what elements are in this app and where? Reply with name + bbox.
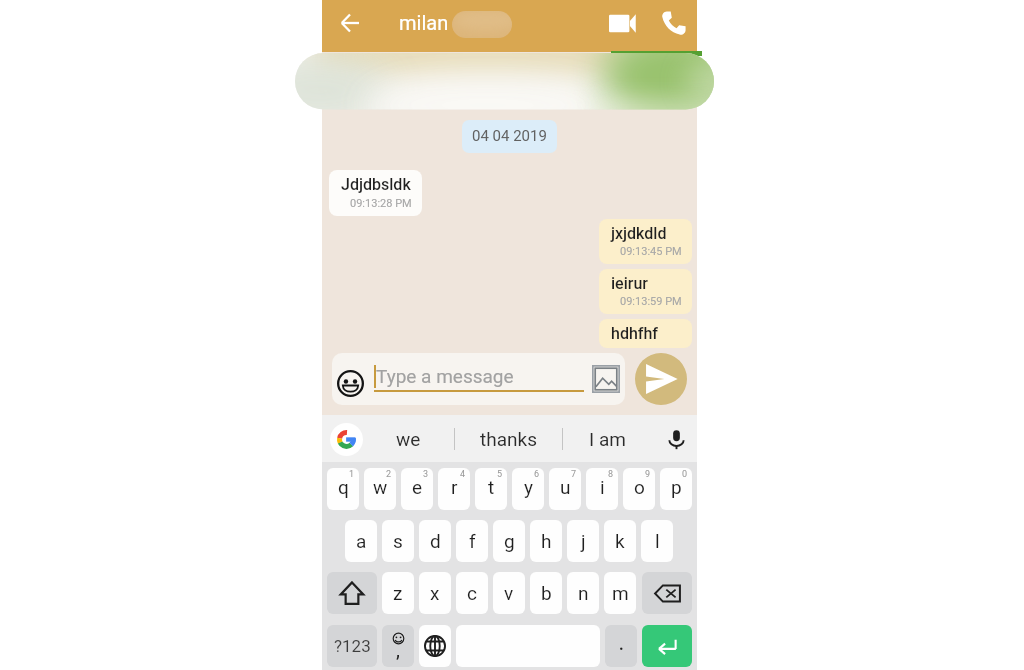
- button[interactable]: Send: [635, 353, 687, 405]
- button[interactable]: we: [363, 415, 453, 462]
- staticText: r: [451, 476, 458, 498]
- staticText: .: [619, 635, 624, 654]
- button[interactable]: Shift: [327, 572, 377, 614]
- staticText: i: [600, 476, 605, 498]
- button[interactable]: ieirur: [599, 269, 692, 314]
- button[interactable]: x: [419, 572, 451, 614]
- staticText: 09:13:28 PM: [350, 197, 412, 210]
- button[interactable]: c: [456, 572, 488, 614]
- staticText: 6: [534, 469, 540, 480]
- button[interactable]: Emoji and comma: [382, 625, 414, 667]
- button[interactable]: y: [512, 468, 544, 510]
- button[interactable]: Enter: [642, 625, 692, 667]
- staticText: 09:13:45 PM: [620, 245, 682, 258]
- button[interactable]: ?123: [327, 625, 377, 667]
- button[interactable]: o: [623, 468, 655, 510]
- button[interactable]: thanks: [463, 415, 553, 462]
- button[interactable]: q: [327, 468, 359, 510]
- staticText: z: [393, 582, 403, 604]
- button[interactable]: r: [438, 468, 470, 510]
- staticText: ieirur: [611, 274, 648, 293]
- button[interactable]: Video call: [600, 1, 644, 45]
- staticText: y: [524, 476, 533, 498]
- staticText: q: [338, 476, 349, 498]
- button[interactable]: hdhfhf: [599, 319, 692, 348]
- staticText: 09:13:59 PM: [620, 295, 682, 308]
- staticText: 7: [571, 469, 577, 480]
- staticText: l: [655, 530, 660, 552]
- button[interactable]: s: [382, 520, 414, 562]
- staticText: 5: [497, 469, 503, 480]
- staticText: milan: [399, 11, 449, 34]
- staticText: I am: [589, 428, 626, 450]
- button[interactable]: z: [382, 572, 414, 614]
- button[interactable]: b: [530, 572, 562, 614]
- staticText: t: [488, 476, 495, 498]
- staticText: f: [469, 530, 476, 552]
- button[interactable]: jxjdkdld: [599, 219, 692, 264]
- staticText: 04 04 2019: [472, 127, 547, 145]
- staticText: d: [430, 530, 441, 552]
- staticText: w: [373, 476, 388, 498]
- button[interactable]: e: [401, 468, 433, 510]
- button[interactable]: Emoji: [337, 370, 364, 397]
- staticText: a: [356, 530, 367, 552]
- staticText: jxjdkdld: [611, 224, 667, 243]
- button[interactable]: Attach image: [592, 365, 620, 393]
- button[interactable]: v: [493, 572, 525, 614]
- button[interactable]: g: [493, 520, 525, 562]
- staticText: g: [504, 530, 515, 552]
- staticText: x: [430, 582, 440, 604]
- button[interactable]: Voice input: [659, 422, 693, 456]
- button[interactable]: h: [530, 520, 562, 562]
- button[interactable]: Change keyboard language: [419, 625, 451, 667]
- button[interactable]: [332, 353, 625, 405]
- staticText: n: [578, 582, 589, 604]
- staticText: 9: [645, 469, 651, 480]
- staticText: p: [671, 476, 682, 498]
- button[interactable]: Backspace: [642, 572, 692, 614]
- staticText: ,: [396, 642, 400, 661]
- staticText: c: [467, 582, 477, 604]
- button[interactable]: n: [567, 572, 599, 614]
- staticText: b: [541, 582, 552, 604]
- staticText: h: [541, 530, 552, 552]
- button[interactable]: d: [419, 520, 451, 562]
- staticText: 4: [460, 469, 466, 480]
- staticText: u: [560, 476, 571, 498]
- button[interactable]: u: [549, 468, 581, 510]
- button[interactable]: Jdjdbsldk: [329, 170, 422, 216]
- button[interactable]: i: [586, 468, 618, 510]
- staticText: 2: [386, 469, 392, 480]
- staticText: j: [581, 530, 586, 552]
- staticText: ?123: [334, 636, 371, 656]
- button[interactable]: l: [641, 520, 673, 562]
- button[interactable]: .: [605, 625, 637, 667]
- button[interactable]: 04 04 2019: [462, 120, 557, 153]
- staticText: 8: [608, 469, 614, 480]
- staticText: m: [612, 582, 629, 604]
- staticText: hdhfhf: [611, 324, 659, 343]
- button[interactable]: w: [364, 468, 396, 510]
- button[interactable]: j: [567, 520, 599, 562]
- button[interactable]: Call: [651, 1, 695, 45]
- staticText: thanks: [480, 428, 537, 450]
- button[interactable]: p: [660, 468, 692, 510]
- button[interactable]: I am: [562, 415, 652, 462]
- staticText: s: [393, 530, 403, 552]
- button[interactable]: Back: [328, 1, 372, 45]
- staticText: k: [615, 530, 625, 552]
- staticText: v: [504, 582, 514, 604]
- staticText: o: [634, 476, 645, 498]
- button[interactable]: a: [345, 520, 377, 562]
- button[interactable]: f: [456, 520, 488, 562]
- button[interactable]: t: [475, 468, 507, 510]
- staticText: Type a message: [376, 365, 514, 387]
- staticText: 0: [682, 469, 688, 480]
- staticText: we: [396, 428, 421, 450]
- button[interactable]: k: [604, 520, 636, 562]
- button[interactable]: Google: [329, 422, 363, 456]
- button[interactable]: m: [604, 572, 636, 614]
- staticText: 1: [349, 469, 355, 480]
